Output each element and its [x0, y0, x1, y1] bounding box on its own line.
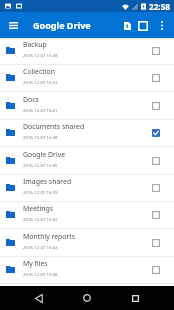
button[interactable]: Navigation menu: [1, 13, 25, 37]
button[interactable]: Back: [27, 286, 51, 310]
staticText: Docs: [23, 95, 39, 104]
button[interactable]: Select all: [131, 14, 154, 37]
staticText: 2016-12-07 16:43: [23, 244, 58, 250]
staticText: 2016-12-07 16:38: [23, 134, 58, 140]
staticText: Backup: [23, 40, 47, 49]
button[interactable]: Collection: [0, 65, 174, 92]
button[interactable]: Images shared: [0, 175, 174, 202]
button[interactable]: Docs: [0, 93, 174, 120]
button[interactable]: Select Backup: [147, 42, 165, 60]
button[interactable]: Select Meetings: [147, 206, 165, 224]
staticText: Monthly reports: [23, 232, 76, 241]
staticText: 2016-12-07 16:45: [23, 162, 58, 168]
staticText: 2016-12-07 16:38: [23, 271, 58, 277]
button[interactable]: Select Collection: [147, 69, 165, 87]
staticText: 2016-12-07 16:39: [23, 189, 58, 195]
button[interactable]: More options: [151, 14, 173, 36]
staticText: 2016-12-07 16:41: [23, 107, 58, 113]
button[interactable]: Recent apps: [123, 286, 147, 310]
staticText: Google Drive: [33, 19, 91, 31]
button[interactable]: Storage: [116, 14, 139, 37]
button[interactable]: Select Docs: [147, 97, 165, 115]
button[interactable]: Select Documents shared: [147, 124, 165, 142]
button[interactable]: Documents shared: [0, 120, 174, 147]
button[interactable]: Google Drive: [0, 148, 174, 175]
staticText: 2016-12-07 16:53: [23, 79, 58, 85]
staticText: Collection: [23, 67, 55, 76]
button[interactable]: My files: [0, 257, 174, 284]
button[interactable]: Select Images shared: [147, 179, 165, 197]
staticText: My files: [23, 259, 48, 268]
button[interactable]: Select Google Drive: [147, 152, 165, 170]
button[interactable]: Backup: [0, 38, 174, 65]
button[interactable]: Home: [75, 286, 99, 310]
staticText: 2016-12-07 16:43: [23, 216, 58, 222]
staticText: 2016-12-07 16:38: [23, 52, 58, 58]
staticText: Documents shared: [23, 122, 85, 131]
button[interactable]: Monthly reports: [0, 230, 174, 257]
button[interactable]: Select Monthly reports: [147, 234, 165, 252]
button[interactable]: Select My files: [147, 261, 165, 279]
staticText: Meetings: [23, 204, 54, 213]
staticText: Images shared: [23, 177, 72, 186]
staticText: 22:58: [149, 1, 171, 12]
staticText: Google Drive: [23, 150, 66, 159]
button[interactable]: Meetings: [0, 202, 174, 229]
